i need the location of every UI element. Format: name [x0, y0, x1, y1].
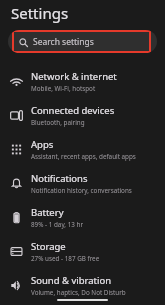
staticText: Battery [31, 206, 64, 219]
staticText: 27% used - 187 GB free [31, 254, 100, 263]
staticText: Volume, haptics, Do Not Disturb [31, 288, 126, 297]
button[interactable]: Apps [0, 132, 165, 166]
staticText: Storage [31, 240, 66, 253]
button[interactable]: Battery [0, 200, 165, 234]
button[interactable]: Storage [0, 234, 165, 268]
staticText: Notifications [31, 172, 88, 185]
staticText: Notification history, conversations [31, 186, 132, 195]
staticText: Sound & vibration [31, 274, 112, 287]
staticText: Assistant, recent apps, default apps [31, 152, 136, 161]
staticText: Bluetooth, pairing [31, 118, 85, 127]
staticText: Connected devices [31, 104, 115, 117]
button[interactable]: Connected devices [0, 98, 165, 132]
staticText: 89% - 1 day, 13 hr [31, 220, 83, 229]
button[interactable]: Search settings [8, 30, 157, 53]
staticText: Mobile, Wi-Fi, hotspot [31, 84, 96, 93]
button[interactable]: Sound & vibration [0, 268, 165, 302]
staticText: Search settings [33, 36, 94, 48]
button[interactable]: Network & internet [0, 64, 165, 98]
button[interactable]: Notifications [0, 166, 165, 200]
staticText: Apps [31, 138, 54, 151]
staticText: Settings [11, 3, 69, 23]
staticText: Network & internet [31, 70, 117, 83]
